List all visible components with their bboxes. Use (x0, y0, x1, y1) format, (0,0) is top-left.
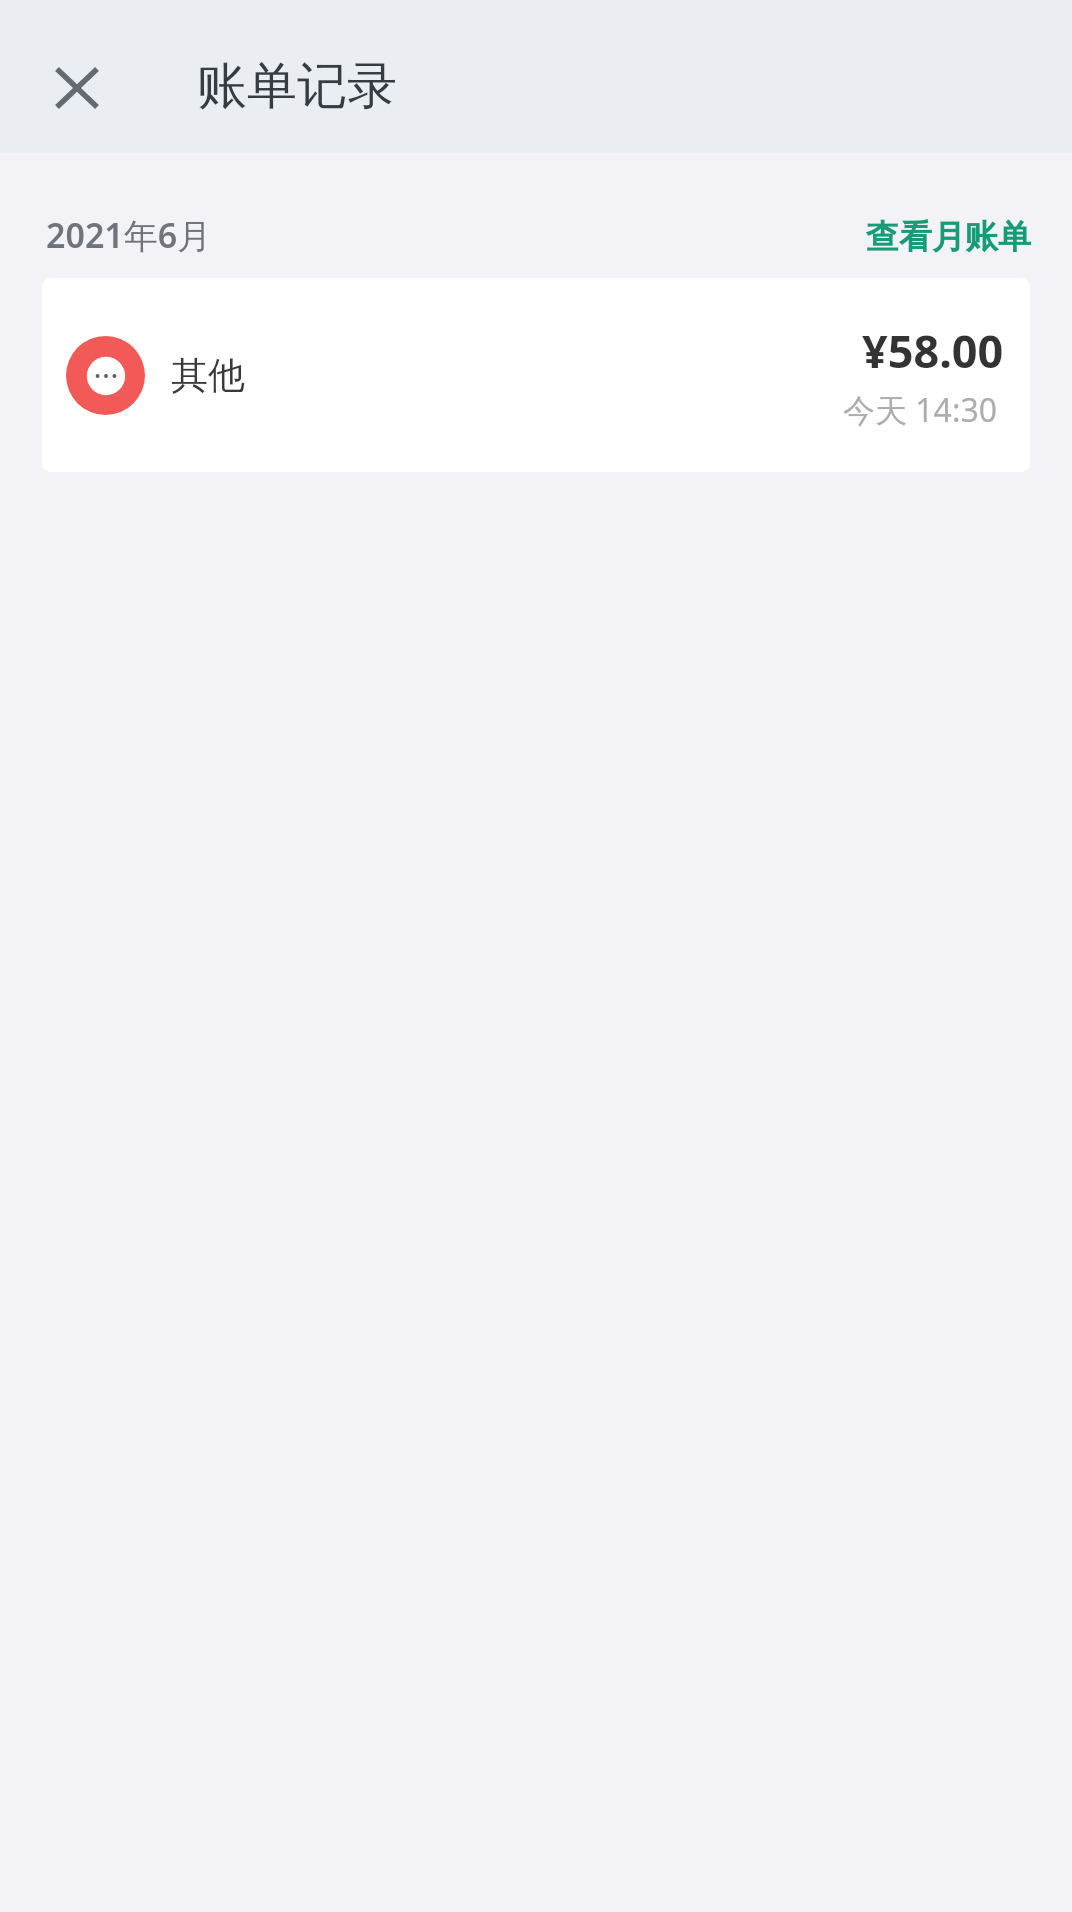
staticText: 账单记录 (197, 55, 397, 118)
staticText: 2021年6月 (46, 212, 212, 258)
staticText: ¥58.00 (862, 320, 1004, 381)
button[interactable]: 其他 (42, 278, 1030, 472)
button[interactable]: Close (37, 48, 117, 128)
button[interactable]: 查看月账单 (866, 216, 1031, 258)
staticText: 其他 (171, 352, 245, 399)
staticText: 查看月账单 (866, 216, 1031, 258)
staticText: 今天 14:30 (843, 388, 998, 432)
